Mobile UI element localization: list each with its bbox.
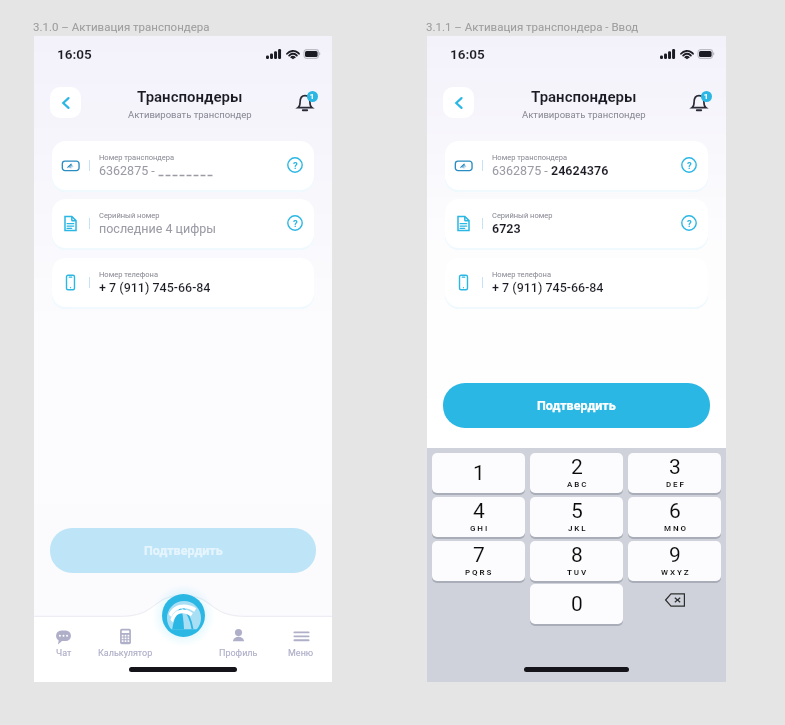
button[interactable]: Справка bbox=[282, 152, 308, 178]
button[interactable]: 1 bbox=[432, 453, 525, 493]
staticText: Серийный номер bbox=[492, 211, 553, 220]
staticText: WXYZ bbox=[661, 568, 691, 577]
staticText: PQRS bbox=[465, 568, 494, 577]
button[interactable]: Назад bbox=[443, 87, 474, 118]
staticText: Калькулятор bbox=[98, 648, 153, 659]
staticText: 3.1.1 – Активация транспондера - Ввод bbox=[426, 20, 639, 33]
staticText: 1 bbox=[310, 92, 315, 101]
button[interactable]: Номер телефона bbox=[52, 258, 314, 307]
staticText: DEF bbox=[666, 480, 686, 489]
staticText: ? bbox=[687, 160, 692, 171]
button[interactable]: Уведомления bbox=[685, 88, 713, 116]
button[interactable]: Удалить bbox=[628, 580, 721, 620]
button[interactable]: 0 bbox=[530, 584, 623, 624]
button[interactable]: Назад bbox=[50, 87, 81, 118]
staticText: Номер телефона bbox=[99, 270, 158, 279]
staticText: 0 bbox=[571, 592, 583, 617]
button[interactable]: Серийный номер bbox=[52, 199, 314, 248]
staticText: JKL bbox=[568, 524, 588, 533]
button[interactable]: Меню bbox=[270, 622, 332, 664]
button[interactable]: Номер транспондера bbox=[52, 141, 314, 190]
staticText: последние 4 цифры bbox=[99, 221, 216, 236]
staticText: 4 bbox=[473, 499, 485, 524]
staticText: 3.1.0 – Активация транспондера bbox=[33, 20, 210, 33]
staticText: 1 bbox=[473, 461, 485, 486]
staticText: Активировать транспондер bbox=[128, 109, 252, 120]
staticText: Транспондеры bbox=[137, 88, 243, 106]
staticText: TUV bbox=[567, 568, 589, 577]
staticText: ? bbox=[687, 218, 692, 229]
staticText: 16:05 bbox=[57, 46, 92, 62]
button[interactable]: 2 bbox=[530, 453, 623, 493]
staticText: GHI bbox=[470, 524, 490, 533]
staticText: 16:05 bbox=[450, 46, 485, 62]
staticText: + 7 (911) 745-66-84 bbox=[99, 280, 211, 295]
button[interactable]: 5 bbox=[530, 497, 623, 537]
staticText: 2 bbox=[571, 455, 583, 480]
staticText: 6723 bbox=[492, 221, 521, 236]
staticText: 7 bbox=[473, 543, 485, 568]
button[interactable]: 6 bbox=[628, 497, 721, 537]
staticText: Подтвердить bbox=[537, 398, 616, 413]
button[interactable]: Главная bbox=[162, 594, 205, 637]
staticText: 9 bbox=[669, 543, 681, 568]
button[interactable]: Калькулятор bbox=[93, 622, 158, 664]
staticText: Номер телефона bbox=[492, 270, 551, 279]
button[interactable]: 8 bbox=[530, 541, 623, 581]
button[interactable]: Справка bbox=[282, 210, 308, 236]
staticText: Номер транспондера bbox=[99, 153, 175, 162]
staticText: 6 bbox=[669, 499, 681, 524]
button[interactable]: 9 bbox=[628, 541, 721, 581]
button[interactable]: Подтвердить bbox=[443, 383, 710, 428]
button[interactable]: Чат bbox=[34, 622, 93, 664]
staticText: Профиль bbox=[219, 648, 258, 659]
staticText: 3 bbox=[669, 455, 681, 480]
button[interactable]: 3 bbox=[628, 453, 721, 493]
button[interactable]: Подтвердить bbox=[50, 528, 316, 573]
button[interactable]: Профиль bbox=[207, 622, 270, 664]
staticText: Чат bbox=[56, 648, 72, 659]
staticText: Серийный номер bbox=[99, 211, 160, 220]
staticText: 6362875 - bbox=[492, 163, 551, 178]
button[interactable]: Серийный номер bbox=[445, 199, 708, 248]
button[interactable]: 7 bbox=[432, 541, 525, 581]
staticText: ? bbox=[293, 160, 298, 171]
staticText: Активировать транспондер bbox=[522, 109, 646, 120]
staticText: Номер транспондера bbox=[492, 153, 568, 162]
button[interactable]: Номер транспондера bbox=[445, 141, 708, 190]
staticText: 24624376 bbox=[551, 163, 609, 178]
staticText: 8 bbox=[571, 543, 583, 568]
staticText: ABC bbox=[567, 480, 589, 489]
staticText: 5 bbox=[571, 499, 583, 524]
staticText: Меню bbox=[288, 648, 314, 659]
staticText: ? bbox=[293, 218, 298, 229]
staticText: Транспондеры bbox=[531, 88, 637, 106]
button[interactable]: 4 bbox=[432, 497, 525, 537]
button[interactable]: Справка bbox=[676, 152, 702, 178]
button[interactable]: Номер телефона bbox=[445, 258, 708, 307]
staticText: 1 bbox=[704, 92, 709, 101]
staticText: 6362875 - bbox=[99, 163, 158, 178]
button[interactable]: Уведомления bbox=[291, 88, 319, 116]
staticText: + 7 (911) 745-66-84 bbox=[492, 280, 604, 295]
staticText: Подтвердить bbox=[144, 543, 223, 558]
button[interactable]: Справка bbox=[676, 210, 702, 236]
staticText: MNO bbox=[664, 524, 688, 533]
